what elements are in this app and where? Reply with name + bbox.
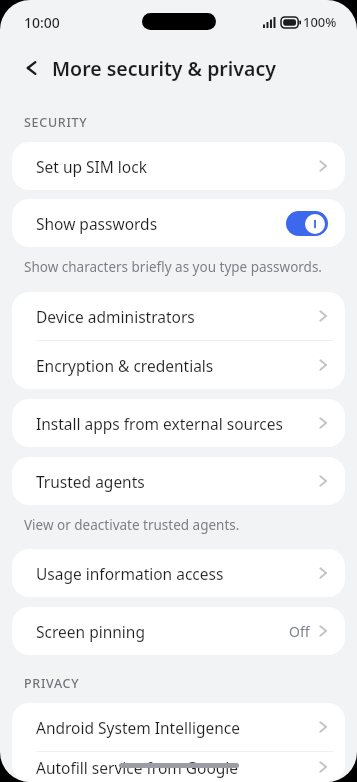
button[interactable]: Show passwords [12, 199, 345, 247]
staticText: More security & privacy [52, 55, 276, 82]
button[interactable]: Screen pinning [12, 607, 345, 655]
button[interactable]: Back [15, 51, 49, 85]
staticText: Android System Intelligence [36, 717, 317, 738]
button[interactable]: Encryption & credentials [12, 341, 345, 389]
staticText: Usage information access [36, 563, 317, 584]
staticText: Off [289, 622, 310, 641]
button[interactable]: Show passwords [286, 211, 328, 236]
button[interactable]: Usage information access [12, 549, 345, 597]
staticText: PRIVACY [24, 675, 80, 692]
staticText: Show passwords [36, 213, 286, 234]
button[interactable]: Install apps from external sources [12, 399, 345, 447]
staticText: Screen pinning [36, 621, 289, 642]
staticText: View or deactivate trusted agents. [24, 516, 240, 534]
staticText: Autofill service from Google [36, 757, 317, 778]
staticText: Device administrators [36, 306, 317, 327]
staticText: Set up SIM lock [36, 156, 317, 177]
staticText: 100% [303, 13, 337, 31]
staticText: Encryption & credentials [36, 355, 317, 376]
staticText: Install apps from external sources [36, 413, 317, 434]
button[interactable]: Android System Intelligence [12, 703, 345, 751]
button[interactable]: Trusted agents [12, 457, 345, 505]
button[interactable]: Autofill service from Google [12, 752, 345, 782]
staticText: 10:00 [24, 13, 60, 32]
staticText: SECURITY [24, 114, 88, 131]
staticText: Trusted agents [36, 471, 317, 492]
button[interactable]: Device administrators [12, 292, 345, 340]
staticText: Show characters briefly as you type pass… [24, 258, 322, 276]
button[interactable]: Set up SIM lock [12, 142, 345, 190]
